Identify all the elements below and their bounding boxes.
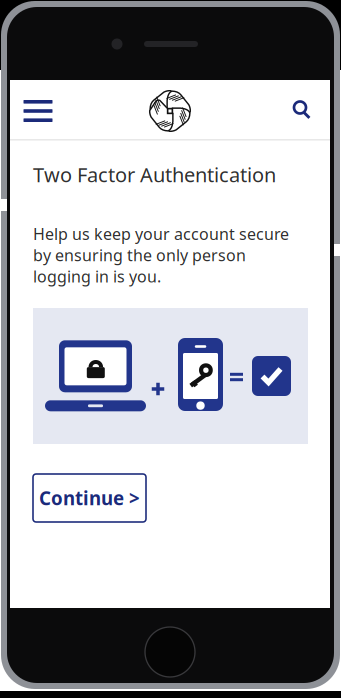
staticText: Continue >: [39, 486, 140, 510]
button[interactable]: Handelsbanken home: [139, 81, 201, 140]
button[interactable]: Menu: [10, 81, 65, 140]
button[interactable]: Continue >: [33, 474, 146, 522]
button[interactable]: Search: [276, 80, 328, 139]
staticText: Two Factor Authentication: [33, 161, 276, 188]
staticText: Help us keep your account secure by ensu…: [33, 223, 289, 287]
